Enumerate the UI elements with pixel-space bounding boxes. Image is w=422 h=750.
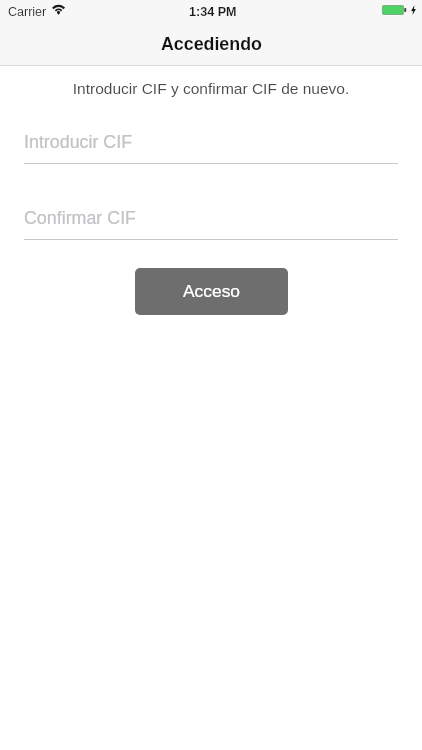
staticText: Confirmar CIF: [24, 208, 136, 228]
other: Wi-Fi signal: [52, 5, 65, 14]
staticText: Carrier: [8, 5, 47, 19]
staticText: Introducir CIF: [24, 132, 133, 152]
other: Battery full: [382, 5, 406, 15]
button[interactable]: Introducir CIF: [24, 130, 398, 164]
staticText: Introducir CIF y confirmar CIF de nuevo.: [0, 80, 422, 97]
staticText: Acceso: [183, 281, 241, 300]
other: Charging: [411, 5, 416, 15]
staticText: 1:34 PM: [189, 5, 237, 19]
button[interactable]: Acceso: [135, 268, 288, 315]
staticText: Accediendo: [161, 34, 262, 54]
button[interactable]: Confirmar CIF: [24, 206, 398, 240]
